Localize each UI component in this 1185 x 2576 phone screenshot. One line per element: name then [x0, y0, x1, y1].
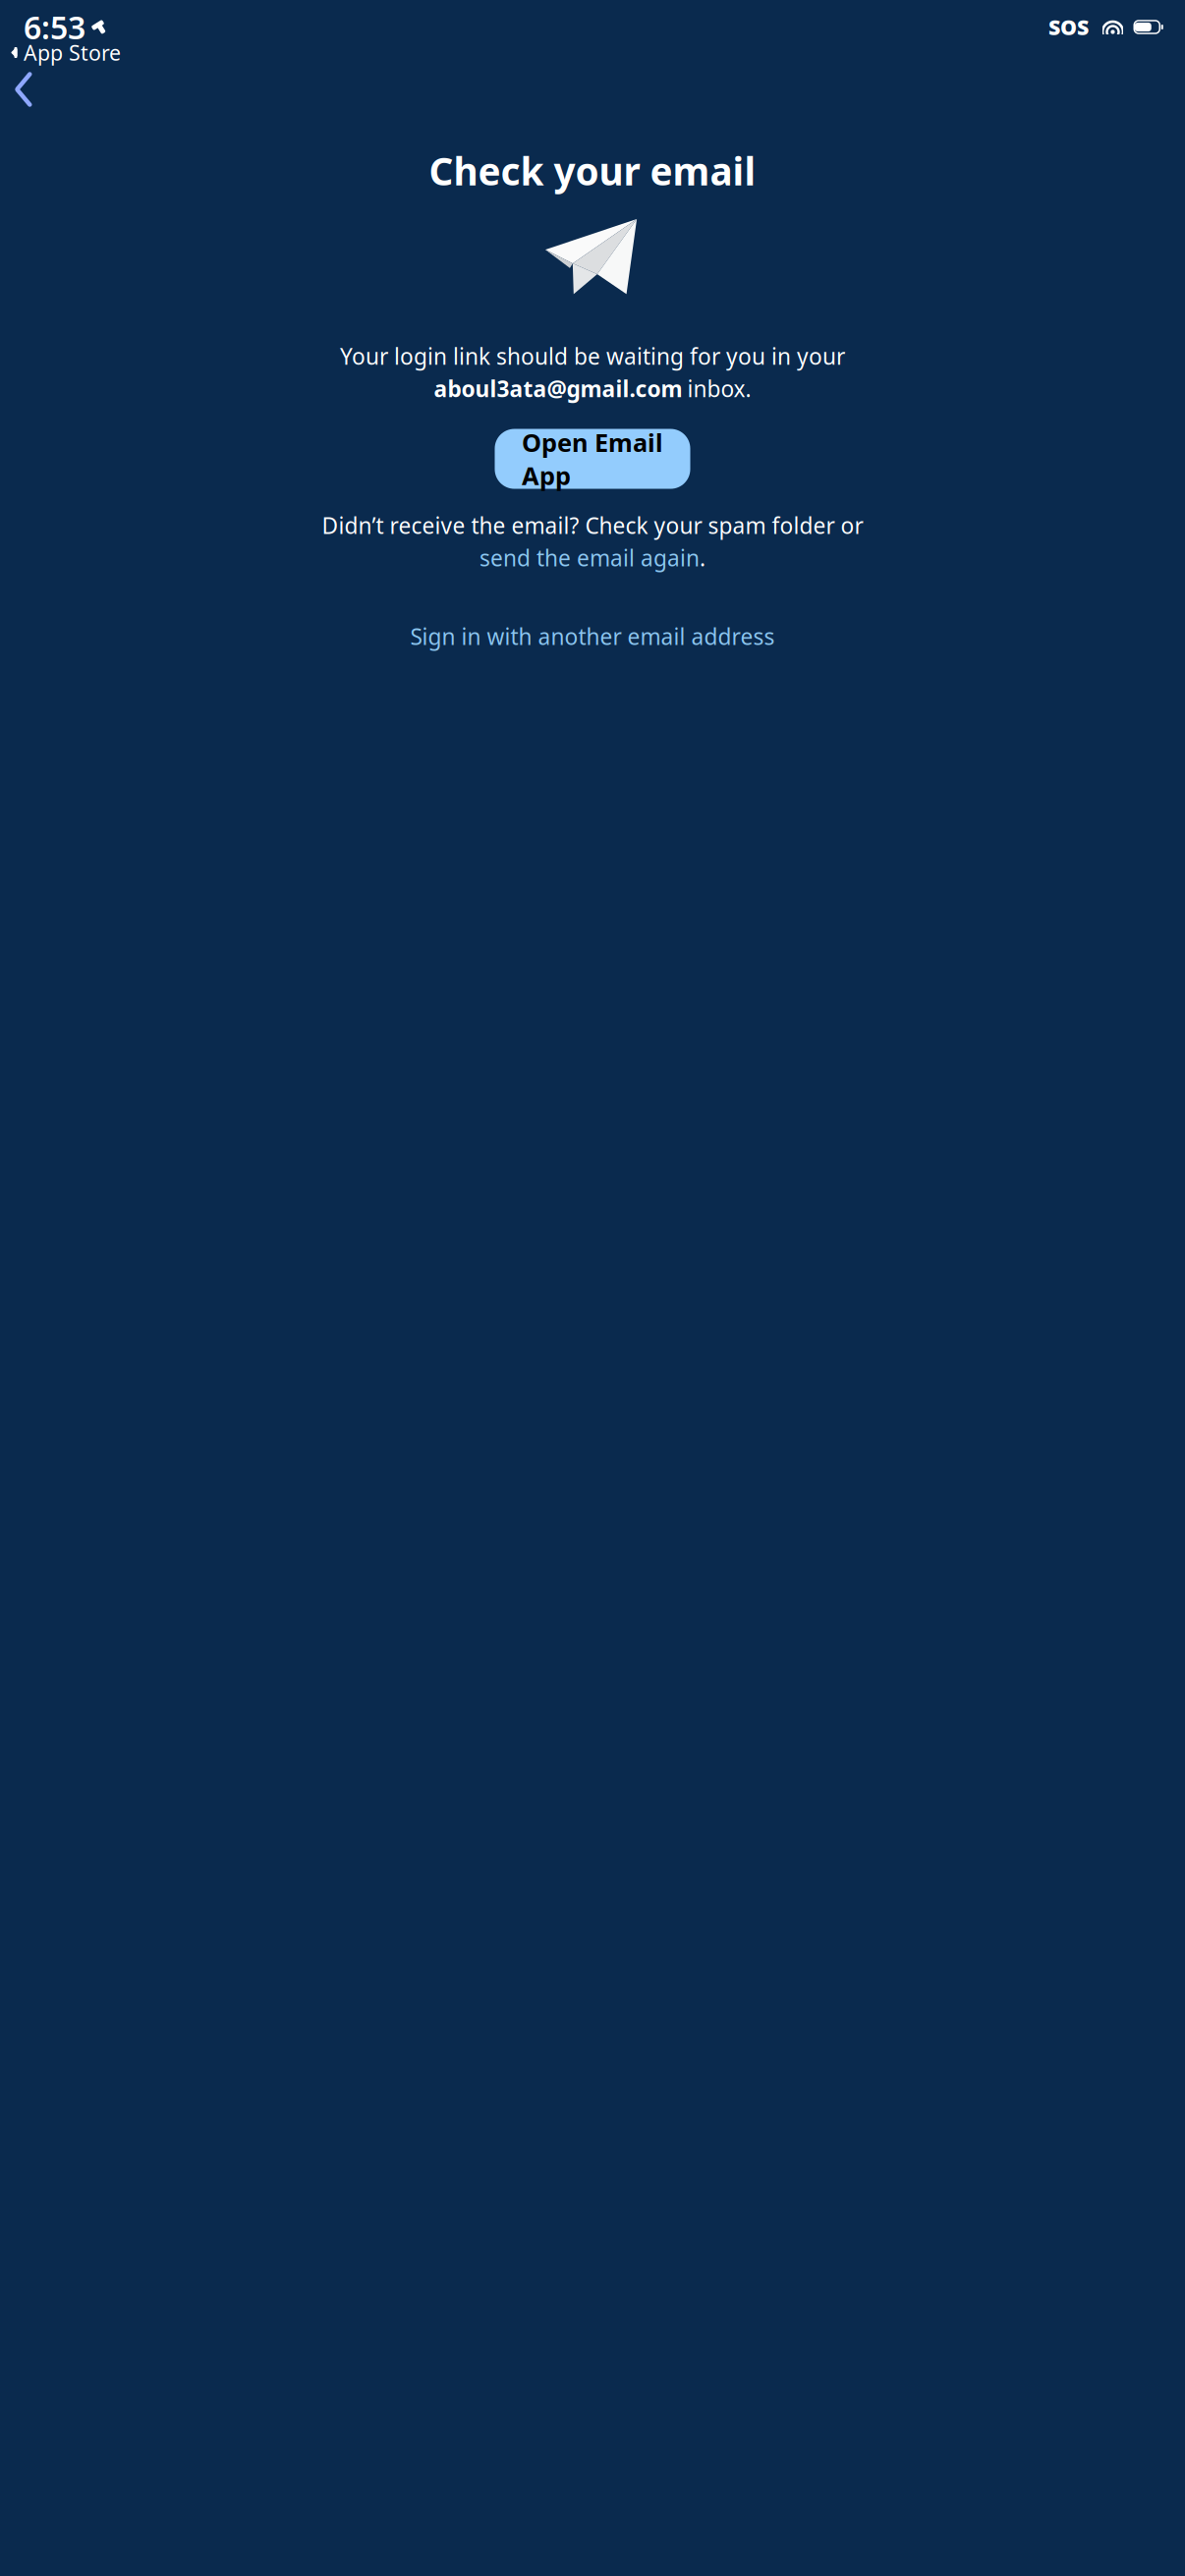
staticText: Open Email App: [522, 426, 663, 492]
staticText: 6:53: [24, 6, 85, 48]
staticText: Check your email: [429, 145, 756, 196]
staticText: Didn’t receive the email? Check your spa…: [322, 510, 863, 540]
staticText: SOS: [1048, 13, 1089, 41]
staticText: .: [700, 543, 705, 573]
button[interactable]: send the email again: [480, 543, 705, 573]
staticText: send the email again: [480, 543, 700, 573]
staticText: Sign in with another email address: [410, 622, 775, 651]
staticText: Your login link should be waiting for yo…: [340, 341, 845, 371]
staticText: inbox.: [687, 374, 751, 403]
staticText: aboul3ata@gmail.com: [434, 374, 682, 403]
button[interactable]: Sign in with another email address: [400, 616, 785, 657]
staticText: App Store: [24, 39, 121, 66]
button[interactable]: Open Email App: [495, 429, 690, 489]
button[interactable]: Back: [0, 65, 47, 114]
